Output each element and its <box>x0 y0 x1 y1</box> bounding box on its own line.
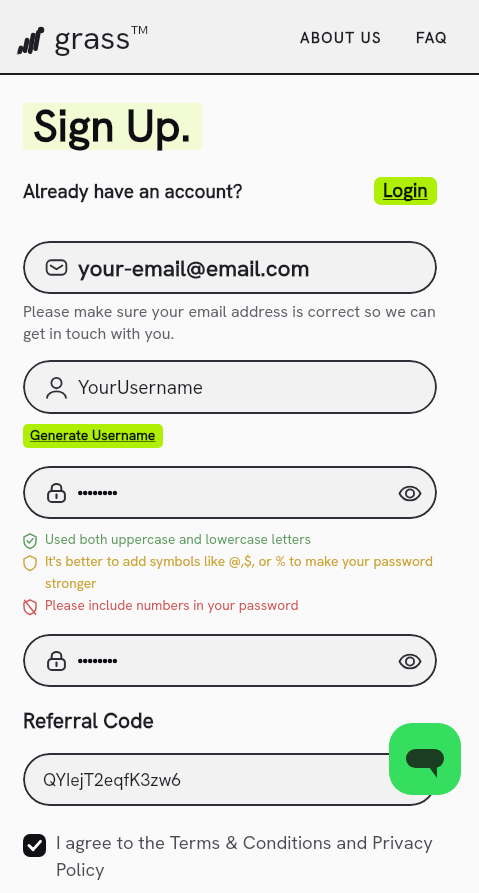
button[interactable]: Show password <box>23 466 437 519</box>
button[interactable]: Show password <box>397 648 423 674</box>
staticText: Generate Username <box>30 426 156 444</box>
button[interactable]: Show password <box>397 480 423 506</box>
staticText: I agree to the Terms & Conditions and Pr… <box>56 830 437 882</box>
button[interactable]: QYIejT2eqfK3zw6 <box>23 753 437 806</box>
button[interactable]: your-email@email.com <box>23 241 437 294</box>
button[interactable]: Show password <box>23 634 437 687</box>
button[interactable]: Open chat <box>389 723 461 795</box>
staticText: Referral Code <box>23 707 154 734</box>
button[interactable]: I agree to the Terms & Conditions and Pr… <box>23 830 437 882</box>
staticText: Used both uppercase and lowercase letter… <box>45 530 312 548</box>
staticText: Already have an account? <box>23 179 243 204</box>
staticText: TM <box>131 22 149 38</box>
staticText: YourUsername <box>78 375 203 400</box>
staticText: Please include numbers in your password <box>45 596 299 614</box>
button[interactable]: ABOUT US <box>294 20 388 56</box>
staticText: Please make sure your email address is c… <box>23 301 437 344</box>
staticText: Sign Up. <box>33 97 192 154</box>
staticText: QYIejT2eqfK3zw6 <box>43 768 182 791</box>
staticText: grass <box>54 17 131 59</box>
button[interactable]: grass <box>10 11 155 65</box>
staticText: FAQ <box>416 28 449 48</box>
button[interactable]: YourUsername <box>23 360 437 414</box>
button[interactable]: FAQ <box>410 20 455 56</box>
staticText: ABOUT US <box>300 28 382 48</box>
staticText: Login <box>383 178 428 203</box>
button[interactable]: Generate Username <box>23 424 163 448</box>
staticText: your-email@email.com <box>78 253 310 283</box>
staticText: It's better to add symbols like @,$, or … <box>45 552 437 592</box>
button[interactable]: Login <box>374 177 437 205</box>
